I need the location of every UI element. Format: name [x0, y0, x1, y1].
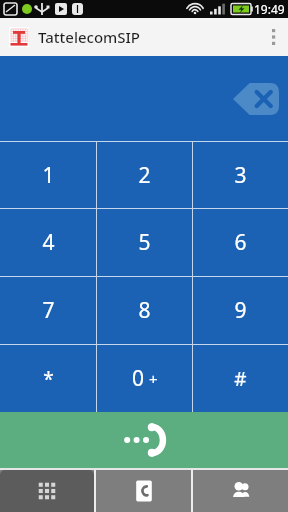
button[interactable]: Call log	[96, 470, 191, 512]
button[interactable]: 6	[193, 209, 288, 276]
button[interactable]: #	[193, 345, 288, 412]
staticText: 2	[138, 161, 151, 190]
button[interactable]: 8	[97, 277, 192, 344]
staticText: 5	[138, 228, 151, 257]
staticText: #	[234, 366, 247, 392]
staticText: 9	[234, 296, 247, 325]
button[interactable]: *	[0, 345, 96, 412]
button[interactable]: 9	[193, 277, 288, 344]
staticText: 8	[138, 296, 151, 325]
button[interactable]: 4	[0, 209, 96, 276]
staticText: 6	[234, 228, 247, 257]
button[interactable]: 0	[97, 345, 192, 412]
button[interactable]: Backspace	[233, 83, 279, 115]
staticText: 7	[42, 296, 55, 325]
staticText: TattelecomSIP	[38, 27, 141, 47]
button[interactable]: 5	[97, 209, 192, 276]
staticText: 19:49	[254, 1, 285, 17]
button[interactable]: More options	[260, 18, 288, 56]
button[interactable]: 3	[193, 142, 288, 208]
staticText: 0	[132, 364, 145, 393]
staticText: 3	[234, 161, 247, 190]
button[interactable]: Call	[0, 412, 288, 468]
staticText: 4	[42, 228, 55, 257]
button[interactable]: 1	[0, 142, 96, 208]
button[interactable]: 7	[0, 277, 96, 344]
staticText: 1	[42, 161, 55, 190]
staticText: +	[149, 369, 158, 389]
button[interactable]: Keypad	[0, 470, 94, 512]
button[interactable]: 2	[97, 142, 192, 208]
staticText: *	[43, 366, 54, 392]
button[interactable]: Contacts	[193, 470, 288, 512]
